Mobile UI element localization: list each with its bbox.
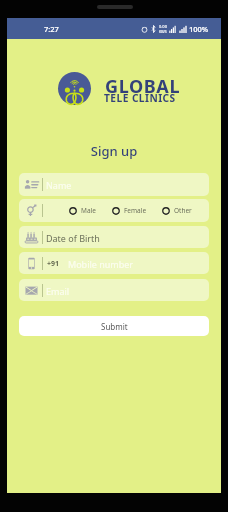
staticText: GLOBAL [105,74,181,99]
button[interactable]: Female [112,206,147,215]
staticText: Male [81,206,96,215]
button[interactable]: +91 [19,252,209,274]
staticText: Email [46,285,70,297]
staticText: TELE CLINICS [104,91,176,105]
staticText: Date of Birth [46,232,100,244]
staticText: Other [174,206,192,215]
button[interactable]: Male [69,206,96,215]
staticText: 7:27 [44,24,59,34]
staticText: Mobile number [68,258,134,270]
staticText: +91 [47,259,60,269]
button[interactable]: Submit [19,316,209,336]
button[interactable]: Email [19,279,209,301]
staticText: Name [46,179,72,191]
button[interactable]: Other [162,206,192,215]
button[interactable]: Name [19,173,209,196]
staticText: 0.00 [159,24,167,29]
staticText: KB/S [159,29,167,34]
button[interactable]: Date of Birth [19,226,209,248]
staticText: Submit [101,321,128,332]
staticText: 100% [189,24,209,34]
staticText: Sign up [7,142,221,160]
staticText: Female [124,206,147,215]
